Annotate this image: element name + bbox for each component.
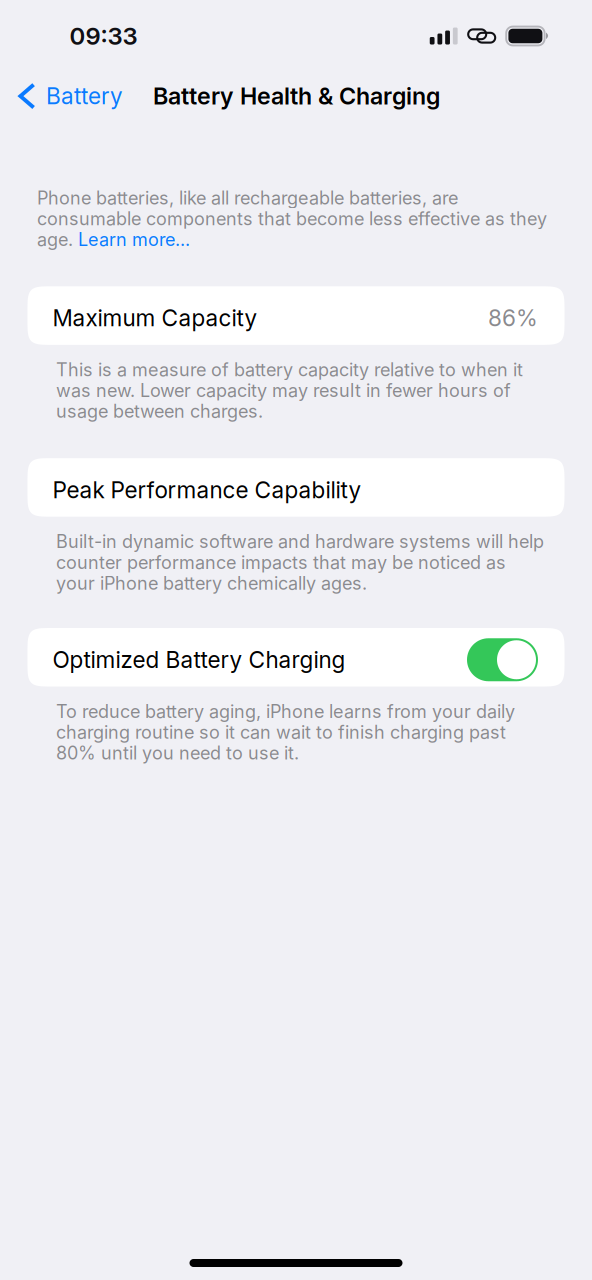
staticText: Peak Performance Capability — [52, 476, 361, 504]
button[interactable]: Peak Performance Capability — [0, 458, 592, 517]
staticText: Battery Health & Charging — [153, 82, 440, 110]
button[interactable]: Battery — [0, 73, 133, 119]
staticText: Built-in dynamic software and hardware s… — [56, 531, 544, 594]
staticText: 86% — [488, 304, 538, 332]
staticText: Battery — [46, 82, 123, 110]
staticText: To reduce battery aging, iPhone learns f… — [56, 700, 515, 764]
button[interactable]: Maximum Capacity — [0, 286, 592, 345]
staticText: This is a measure of battery capacity re… — [56, 359, 523, 422]
staticText: 09:33 — [69, 21, 137, 50]
button[interactable]: Optimized Battery Charging — [0, 628, 592, 686]
staticText: Phone batteries, like all rechargeable b… — [37, 187, 547, 250]
staticText: Optimized Battery Charging — [52, 646, 345, 673]
staticText: Maximum Capacity — [52, 304, 257, 332]
